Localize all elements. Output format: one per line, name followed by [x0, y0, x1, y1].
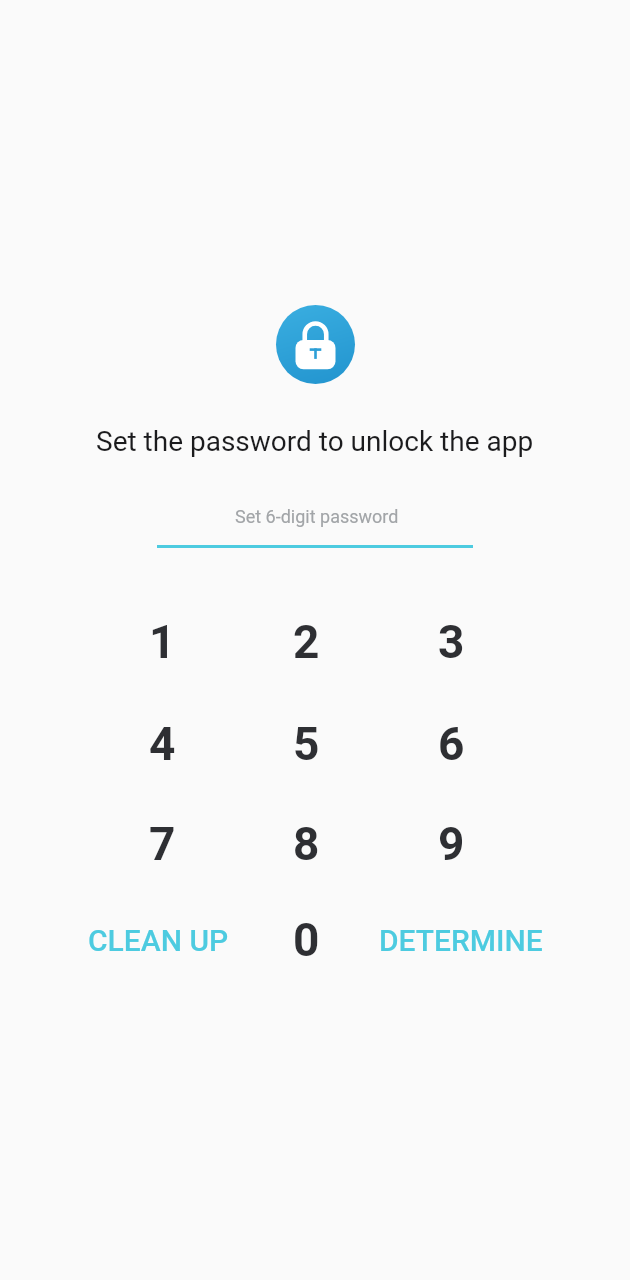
- staticText: 8: [293, 817, 320, 871]
- button[interactable]: 1: [92, 594, 232, 690]
- staticText: CLEAN UP: [88, 923, 229, 958]
- staticText: 5: [293, 717, 320, 771]
- staticText: Set the password to unlock the app: [96, 425, 534, 458]
- staticText: 7: [149, 817, 176, 871]
- button[interactable]: 9: [381, 796, 521, 892]
- button[interactable]: 7: [92, 796, 232, 892]
- button[interactable]: 0: [246, 900, 366, 980]
- staticText: 1: [149, 615, 176, 669]
- staticText: 0: [293, 913, 320, 967]
- button[interactable]: 8: [236, 796, 376, 892]
- button[interactable]: 6: [381, 696, 521, 792]
- button[interactable]: DETERMINE: [366, 900, 556, 980]
- button[interactable]: 5: [236, 696, 376, 792]
- staticText: DETERMINE: [379, 923, 543, 958]
- staticText: Set 6-digit password: [235, 506, 399, 527]
- button[interactable]: 3: [381, 594, 521, 690]
- button[interactable]: 2: [236, 594, 376, 690]
- button[interactable]: CLEAN UP: [68, 900, 248, 980]
- staticText: 2: [293, 615, 320, 669]
- staticText: 6: [438, 717, 465, 771]
- staticText: 4: [149, 717, 176, 771]
- button[interactable]: 4: [92, 696, 232, 792]
- staticText: 9: [438, 817, 465, 871]
- staticText: 3: [438, 615, 465, 669]
